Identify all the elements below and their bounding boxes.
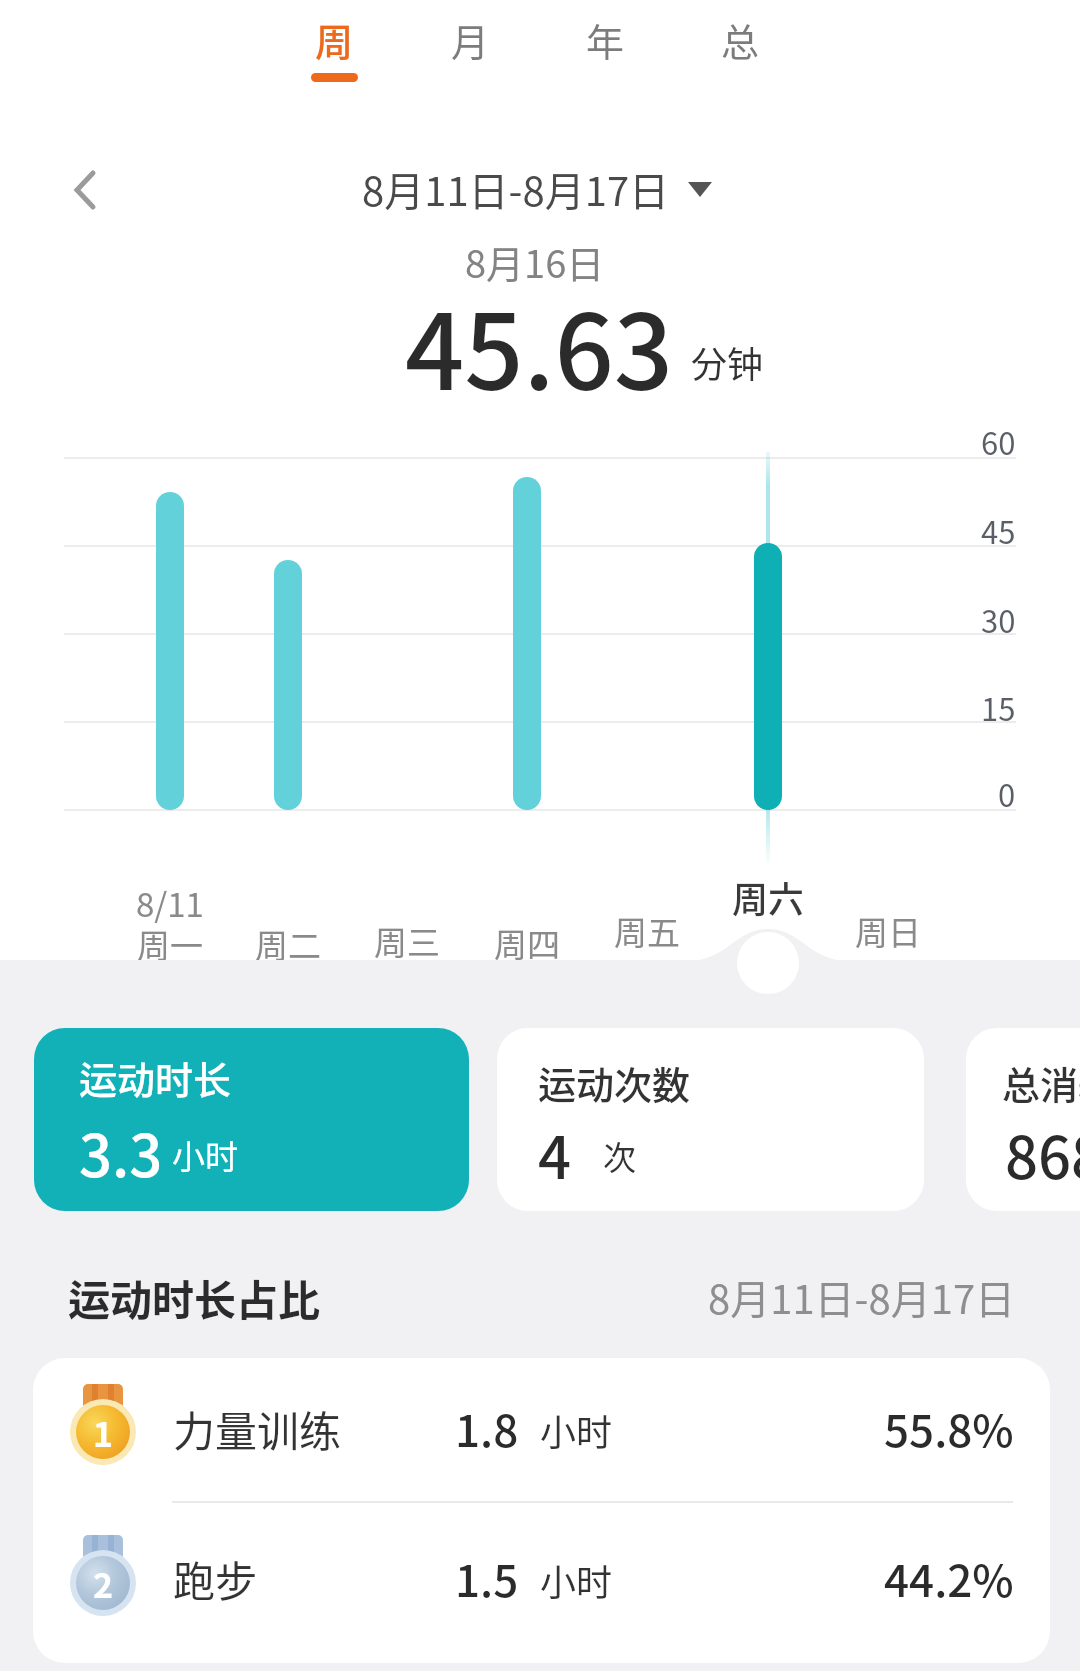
staticText: 868 (1005, 1112, 1080, 1192)
button[interactable]: 月 (415, 0, 525, 95)
staticText: 1 (93, 1408, 114, 1457)
staticText: 30 (981, 597, 1016, 642)
staticText: 分钟 (691, 336, 764, 388)
staticText: 3.3 (79, 1110, 163, 1190)
staticText: 周五 (614, 907, 680, 955)
staticText: 总消耗 (1002, 1055, 1080, 1110)
staticText: 周一 (137, 920, 203, 968)
staticText: 周二 (255, 920, 321, 968)
staticText: 总 (721, 12, 760, 67)
staticText: 0 (998, 771, 1016, 816)
staticText: 小时 (540, 1404, 613, 1456)
staticText: 4 (538, 1112, 572, 1192)
staticText: 1.5 (455, 1546, 519, 1610)
staticText: 周四 (494, 919, 560, 967)
staticText: 1.8 (455, 1396, 519, 1460)
staticText: 44.2% (884, 1546, 1014, 1610)
staticText: 小时 (172, 1131, 238, 1179)
button[interactable]: 总 (685, 0, 795, 95)
staticText: 周六 (732, 871, 805, 921)
button[interactable]: 年 (550, 0, 660, 95)
staticText: 力量训练 (173, 1398, 342, 1459)
staticText: 运动时长占比 (68, 1267, 321, 1328)
staticText: 8月11日-8月17日 (362, 160, 670, 218)
staticText: 45.63 (405, 269, 674, 420)
staticText: 月 (451, 12, 490, 67)
staticText: 2 (93, 1559, 114, 1608)
button[interactable]: 运动时长 (34, 1028, 469, 1211)
staticText: 8/11 (136, 879, 204, 927)
button[interactable]: 周 (279, 0, 389, 95)
staticText: 年 (586, 12, 625, 67)
staticText: 周三 (374, 917, 440, 965)
staticText: 45 (981, 508, 1016, 553)
staticText: 周日 (855, 907, 921, 955)
staticText: 55.8% (884, 1396, 1014, 1460)
staticText: 跑步 (173, 1548, 258, 1609)
button[interactable] (55, 158, 115, 222)
staticText: 运动次数 (538, 1055, 691, 1110)
button[interactable]: 力量训练 (33, 1358, 1050, 1502)
staticText: 运动时长 (79, 1050, 232, 1105)
staticText: 周 (315, 12, 354, 67)
staticText: 60 (981, 419, 1016, 464)
button[interactable]: 运动次数 (497, 1028, 924, 1211)
button[interactable]: 总消耗 (966, 1028, 1080, 1211)
staticText: 8月11日-8月17日 (708, 1268, 1016, 1326)
button[interactable]: 8月11日-8月17日 (340, 156, 730, 222)
staticText: 次 (603, 1132, 636, 1180)
staticText: 8月16日 (465, 234, 605, 289)
button[interactable]: 跑步 (33, 1503, 1050, 1653)
staticText: 小时 (540, 1554, 613, 1606)
staticText: 15 (981, 685, 1016, 730)
